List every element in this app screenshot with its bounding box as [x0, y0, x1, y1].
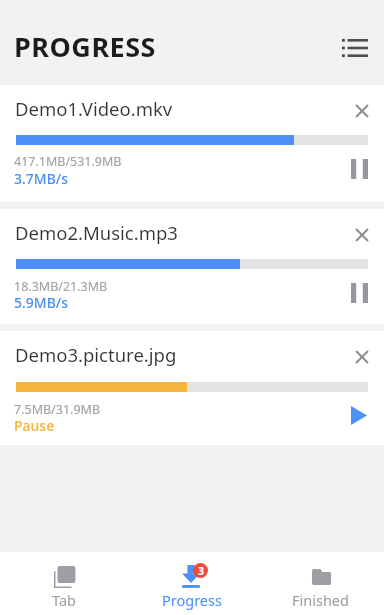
staticText: Pause	[14, 416, 55, 435]
button[interactable]: Pause download	[341, 275, 377, 311]
staticText: Progress	[162, 590, 222, 610]
button[interactable]: Sort list	[333, 28, 377, 68]
button[interactable]: Cancel download	[344, 217, 380, 253]
staticText: 7.5MB/31.9MB	[14, 401, 101, 418]
button[interactable]: Pause download	[341, 151, 377, 187]
button[interactable]: Finished	[256, 552, 384, 615]
button[interactable]: Tab	[0, 552, 128, 615]
staticText: Demo1.Video.mkv	[15, 96, 173, 121]
staticText: 417.1MB/531.9MB	[14, 153, 122, 170]
button[interactable]: Cancel download	[344, 339, 380, 375]
staticText: PROGRESS	[14, 28, 156, 65]
staticText: 18.3MB/21.3MB	[14, 278, 108, 295]
button[interactable]: Resume download	[341, 397, 377, 433]
staticText: Tab	[52, 590, 76, 610]
staticText: 5.9MB/s	[14, 293, 69, 312]
staticText: 3	[198, 564, 204, 578]
button[interactable]: 3	[128, 552, 256, 615]
staticText: Demo2.Music.mp3	[15, 220, 178, 245]
button[interactable]: Cancel download	[344, 93, 380, 129]
staticText: 3.7MB/s	[14, 169, 69, 188]
staticText: Demo3.picture.jpg	[15, 342, 177, 367]
staticText: Finished	[292, 590, 349, 610]
